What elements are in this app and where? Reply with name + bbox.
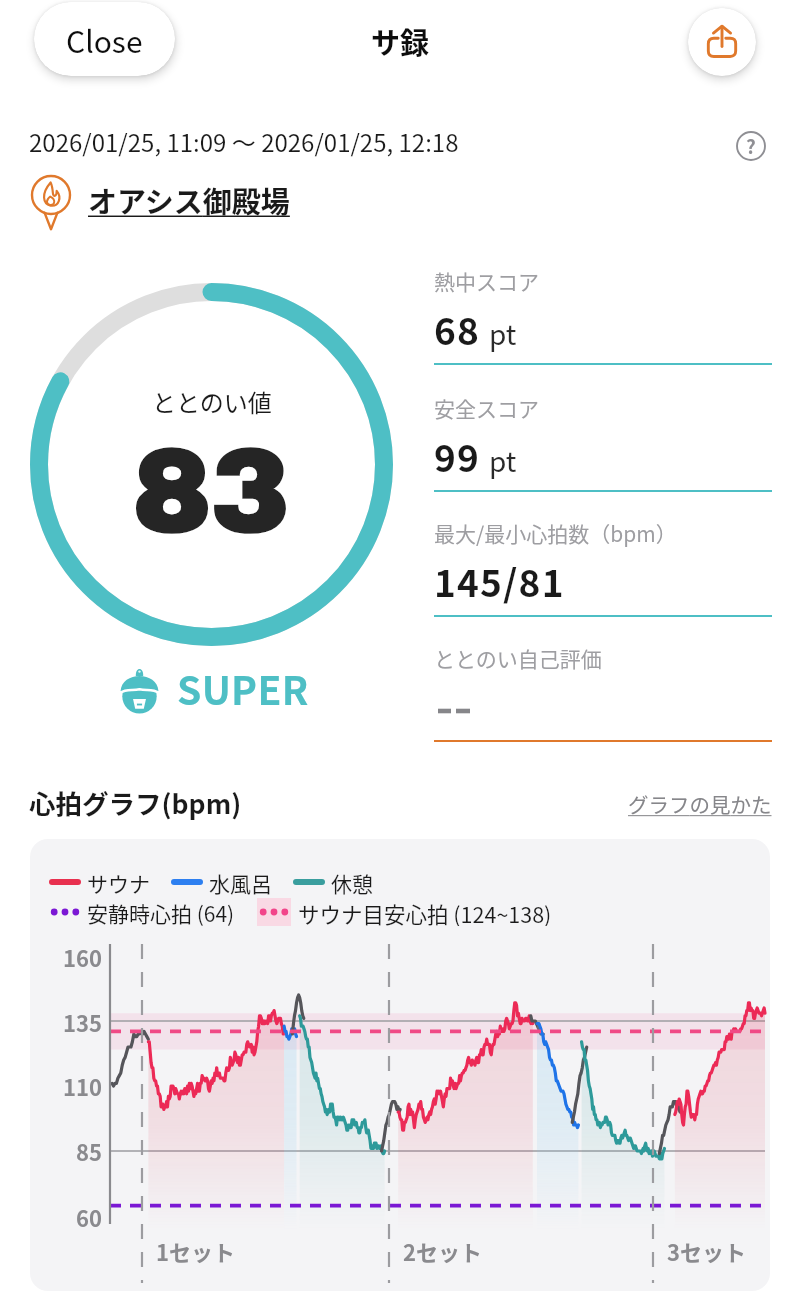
staticText: サウナ目安心拍 (124~138) [298, 898, 552, 926]
staticText: pt [489, 440, 517, 481]
staticText: 60 [76, 1201, 102, 1233]
staticText: 安全スコア [434, 393, 539, 423]
staticText: 2セット [403, 1235, 482, 1267]
staticText: 熱中スコア [434, 266, 539, 296]
staticText: ととのい値 [152, 384, 272, 419]
staticText: ととのい自己評価 [434, 643, 602, 673]
staticText: 145/81 [434, 554, 565, 608]
staticText: 心拍グラフ(bpm) [29, 783, 242, 821]
staticText: 83 [133, 428, 290, 555]
staticText: 休憩 [331, 868, 373, 896]
button[interactable]: オアシス御殿場 [26, 173, 290, 227]
staticText: サウナ [87, 868, 150, 896]
button[interactable]: Close [34, 2, 175, 76]
button[interactable]: グラフの見かた [628, 789, 772, 819]
staticText: pt [489, 313, 517, 354]
button[interactable]: Share [688, 8, 756, 76]
staticText: SUPER [177, 660, 309, 716]
staticText: 3セット [667, 1235, 746, 1267]
staticText: 最大/最小心拍数（bpm） [434, 518, 677, 548]
staticText: 2026/01/25, 11:09 〜 2026/01/25, 12:18 [29, 124, 459, 159]
staticText: 160 [63, 941, 102, 973]
staticText: 1セット [156, 1235, 235, 1267]
staticText: 85 [76, 1135, 102, 1167]
staticText: オアシス御殿場 [88, 179, 290, 221]
staticText: 安静時心拍 (64) [87, 898, 235, 926]
staticText: 99 [434, 429, 481, 483]
staticText: グラフの見かた [628, 789, 772, 819]
staticText: サ録 [371, 20, 430, 62]
staticText: 68 [434, 302, 481, 356]
staticText: 135 [63, 1006, 102, 1038]
staticText: 110 [63, 1070, 102, 1102]
staticText: 水風呂 [209, 868, 272, 896]
staticText: ? [746, 132, 756, 160]
button[interactable]: Help [736, 131, 766, 161]
staticText: Close [66, 18, 143, 61]
